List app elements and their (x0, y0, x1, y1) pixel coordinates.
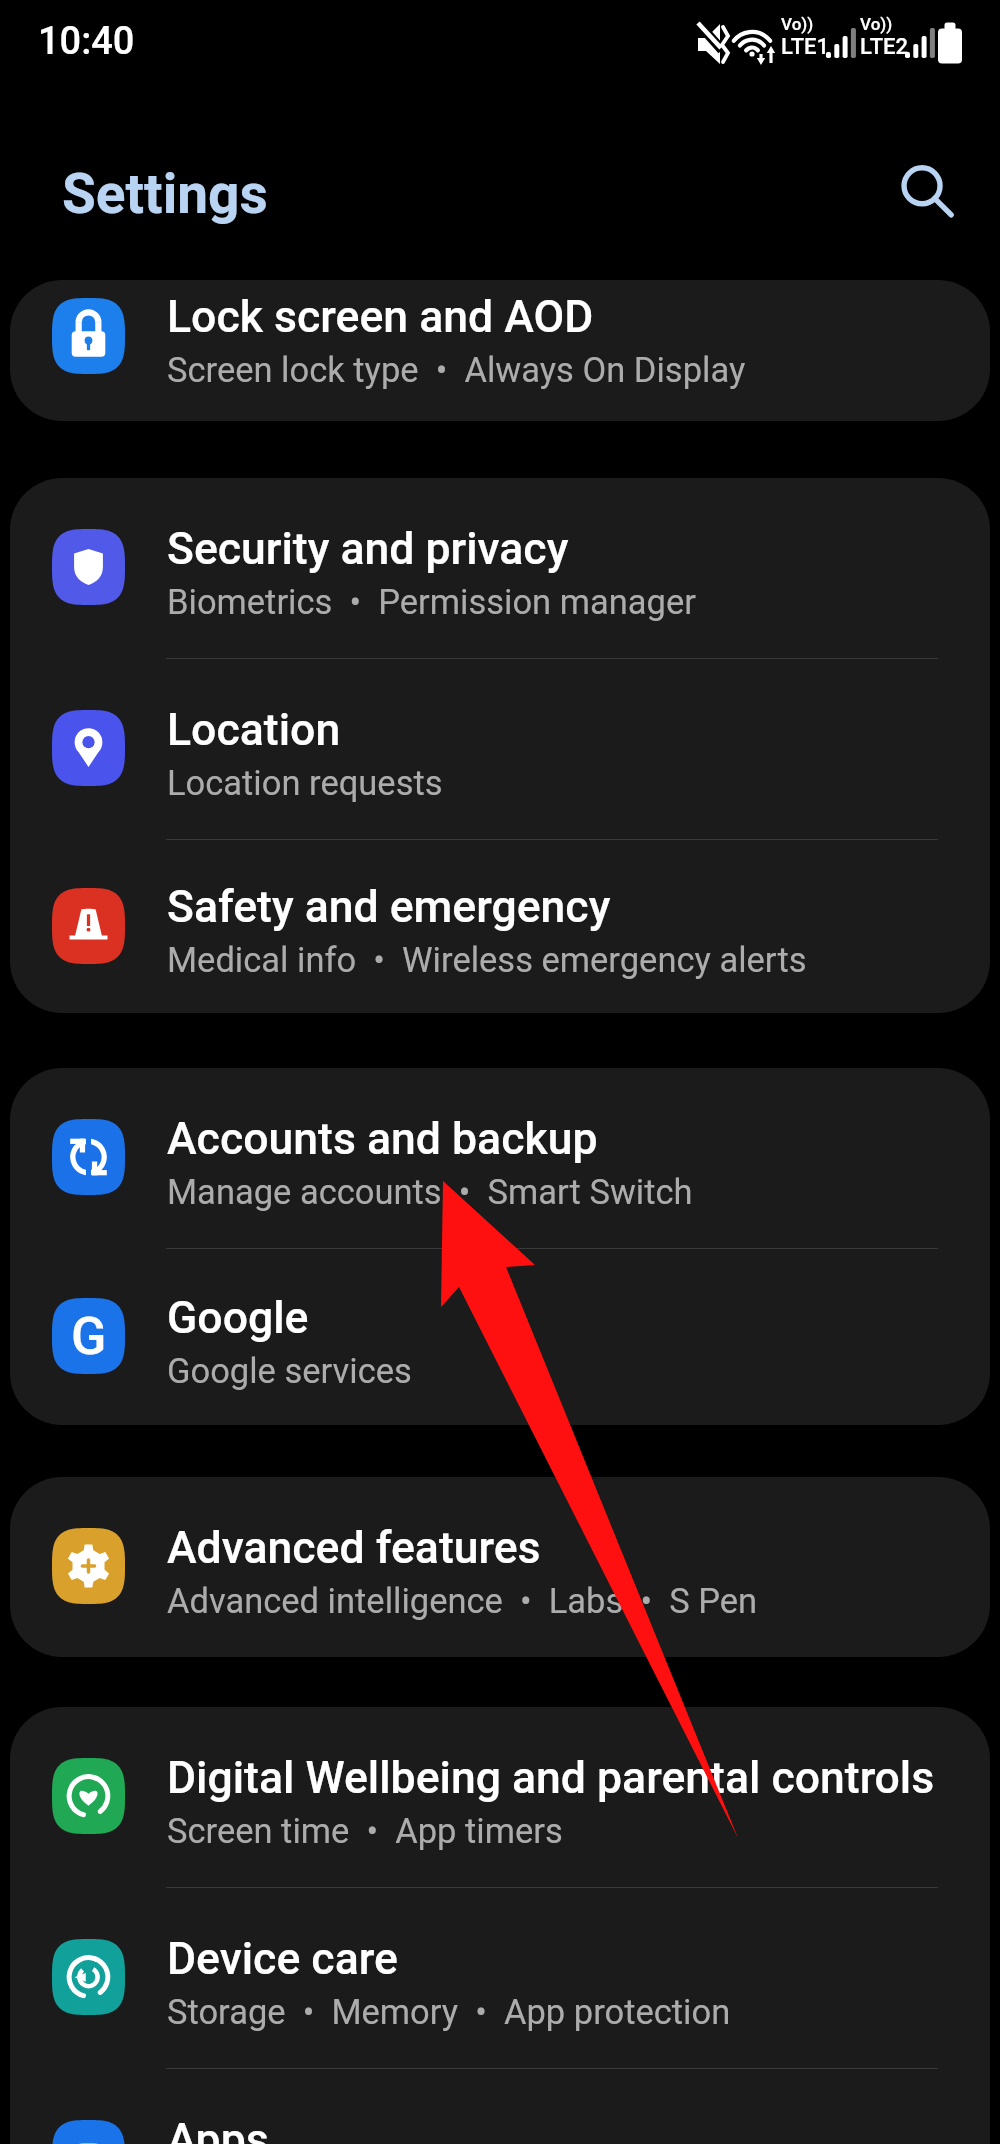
button[interactable]: Device care (10, 1888, 990, 2068)
staticText: Location requests (167, 763, 443, 803)
staticText: Accounts and backup (167, 1113, 598, 1165)
button[interactable]: Safety and emergency (10, 840, 990, 1013)
button[interactable]: Security and privacy (10, 478, 990, 658)
staticText: Settings (62, 162, 268, 226)
staticText: Device care (167, 1933, 398, 1985)
staticText: Location (167, 704, 341, 756)
button[interactable]: Search (886, 151, 968, 233)
button[interactable]: Apps (10, 2069, 990, 2144)
staticText: G (71, 1306, 107, 1367)
staticText: Advanced intelligence • Labs • S Pen (167, 1581, 758, 1621)
staticText: Screen lock type • Always On Display (167, 350, 746, 390)
staticText: Screen time • App timers (167, 1811, 563, 1851)
staticText: Biometrics • Permission manager (167, 582, 696, 622)
staticText: Google services (167, 1351, 412, 1391)
staticText: LTE2 (860, 34, 909, 60)
button[interactable]: Lock screen and AOD (10, 280, 990, 421)
staticText: Manage accounts • Smart Switch (167, 1172, 693, 1212)
staticText: Lock screen and AOD (167, 291, 594, 343)
staticText: Medical info • Wireless emergency alerts (167, 940, 807, 980)
staticText: Digital Wellbeing and parental controls (167, 1752, 935, 1804)
staticText: 10:40 (38, 19, 135, 64)
button[interactable]: Location (10, 659, 990, 839)
staticText: Storage • Memory • App protection (167, 1992, 731, 2032)
staticText: Security and privacy (167, 523, 569, 575)
staticText: Vo)) (860, 14, 893, 34)
staticText: Vo)) (781, 14, 814, 34)
staticText: LTE1 (781, 34, 830, 60)
button[interactable]: Digital Wellbeing and parental controls (10, 1707, 990, 1887)
staticText: Advanced features (167, 1522, 541, 1574)
button[interactable]: G (10, 1249, 990, 1425)
staticText: Apps (167, 2114, 269, 2144)
staticText: Safety and emergency (167, 881, 611, 933)
button[interactable]: Advanced features (10, 1477, 990, 1657)
staticText: Google (167, 1292, 309, 1344)
button[interactable]: Accounts and backup (10, 1068, 990, 1248)
